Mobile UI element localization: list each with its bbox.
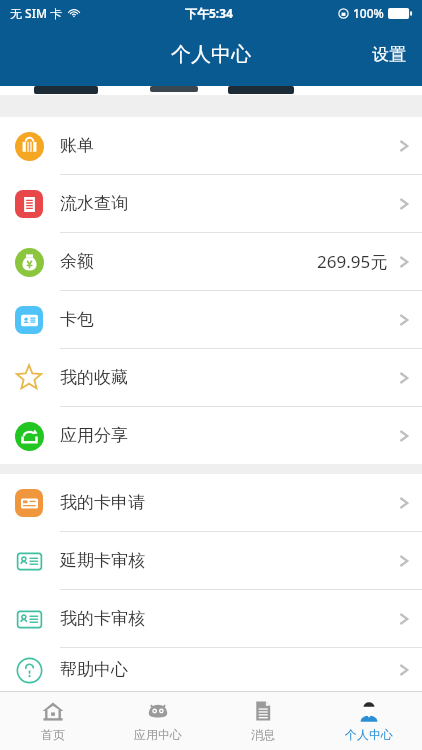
staticText: 下午5:34 xyxy=(185,5,233,21)
staticText: 应用分享 xyxy=(60,425,128,446)
button[interactable]: 首页 xyxy=(0,692,105,750)
staticText: 我的卡申请 xyxy=(60,492,145,513)
button[interactable]: 我的卡审核 xyxy=(0,590,422,648)
staticText: 卡包 xyxy=(60,309,94,330)
staticText: 269.95元 xyxy=(317,250,388,273)
staticText: 账单 xyxy=(60,135,94,156)
button[interactable]: 余额 xyxy=(0,233,422,291)
staticText: 首页 xyxy=(41,727,65,742)
button[interactable]: 消息 xyxy=(210,692,316,750)
staticText: 应用中心 xyxy=(134,727,182,742)
button[interactable]: 帮助中心 xyxy=(0,648,422,691)
button[interactable]: 我的卡申请 xyxy=(0,474,422,532)
staticText: 个人中心 xyxy=(171,42,251,67)
button[interactable]: 个人中心 xyxy=(316,692,422,750)
staticText: 设置 xyxy=(372,44,406,65)
staticText: 帮助中心 xyxy=(60,659,128,680)
button[interactable]: 流水查询 xyxy=(0,175,422,233)
staticText: 流水查询 xyxy=(60,193,128,214)
button[interactable]: 延期卡审核 xyxy=(0,532,422,590)
staticText: 余额 xyxy=(60,251,94,272)
button[interactable]: 应用中心 xyxy=(105,692,210,750)
staticText: 个人中心 xyxy=(345,727,393,742)
button[interactable]: 账单 xyxy=(0,117,422,175)
staticText: 消息 xyxy=(251,727,275,742)
staticText: 我的收藏 xyxy=(60,367,128,388)
button[interactable]: 应用分享 xyxy=(0,407,422,464)
staticText: 无 SIM 卡 xyxy=(10,5,63,21)
button[interactable]: 卡包 xyxy=(0,291,422,349)
staticText: 延期卡审核 xyxy=(60,550,145,571)
button[interactable]: 我的收藏 xyxy=(0,349,422,407)
staticText: 100% xyxy=(353,5,384,21)
button[interactable]: 设置 xyxy=(356,32,422,77)
staticText: 我的卡审核 xyxy=(60,608,145,629)
